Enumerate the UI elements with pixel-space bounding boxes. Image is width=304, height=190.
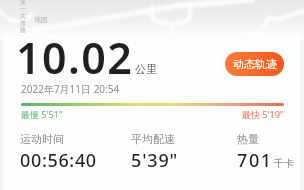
staticText: 00:56:40 — [20, 148, 97, 173]
staticText: 5'39" — [131, 148, 179, 173]
staticText: 动态轨迹 — [233, 57, 277, 71]
button[interactable]: 动态轨迹 — [225, 52, 284, 76]
staticText: 平均配速 — [131, 132, 175, 146]
staticText: 10.02 — [16, 28, 134, 87]
staticText: 地图 — [34, 15, 48, 24]
staticText: 运动时间 — [20, 132, 64, 146]
staticText: 2022年7月11日 20:54 — [21, 82, 120, 96]
staticText: 最快 5'19" — [242, 108, 284, 120]
staticText: 公里 — [135, 62, 157, 76]
staticText: 最慢 5'51" — [21, 108, 63, 120]
staticText: 千卡 — [274, 157, 294, 170]
staticText: 701 — [237, 148, 273, 173]
staticText: 热量 — [237, 132, 259, 146]
staticText: 第一大道路 — [20, 0, 26, 34]
